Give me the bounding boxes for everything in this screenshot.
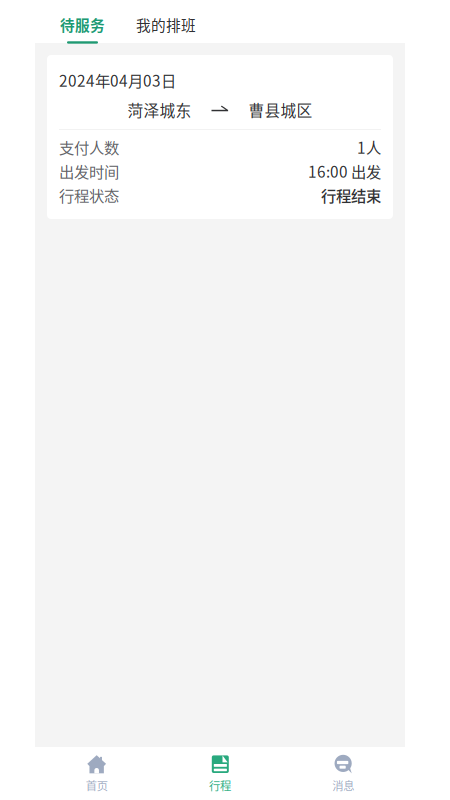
button[interactable]: 首页 — [35, 747, 158, 800]
staticText: 菏泽城东 — [127, 98, 191, 121]
staticText: 行程结束 — [321, 184, 381, 206]
button[interactable]: 待服务 — [60, 14, 105, 44]
staticText: 待服务 — [60, 14, 105, 35]
staticText: 1人 — [357, 136, 381, 158]
staticText: 首页 — [86, 777, 108, 793]
staticText: 支付人数 — [59, 136, 119, 158]
staticText: 我的排班 — [136, 14, 196, 35]
button[interactable]: 消息 — [282, 747, 405, 800]
staticText: 曹县城区 — [248, 98, 312, 121]
staticText: 16:00 出发 — [308, 160, 381, 182]
staticText: 出发时间 — [59, 160, 119, 182]
staticText: 消息 — [332, 777, 354, 793]
staticText: 行程状态 — [59, 184, 119, 206]
staticText: 行程 — [209, 777, 231, 793]
button[interactable]: 我的排班 — [136, 14, 196, 44]
staticText: 2024年04月03日 — [59, 69, 176, 91]
button[interactable]: 行程 — [158, 747, 282, 800]
